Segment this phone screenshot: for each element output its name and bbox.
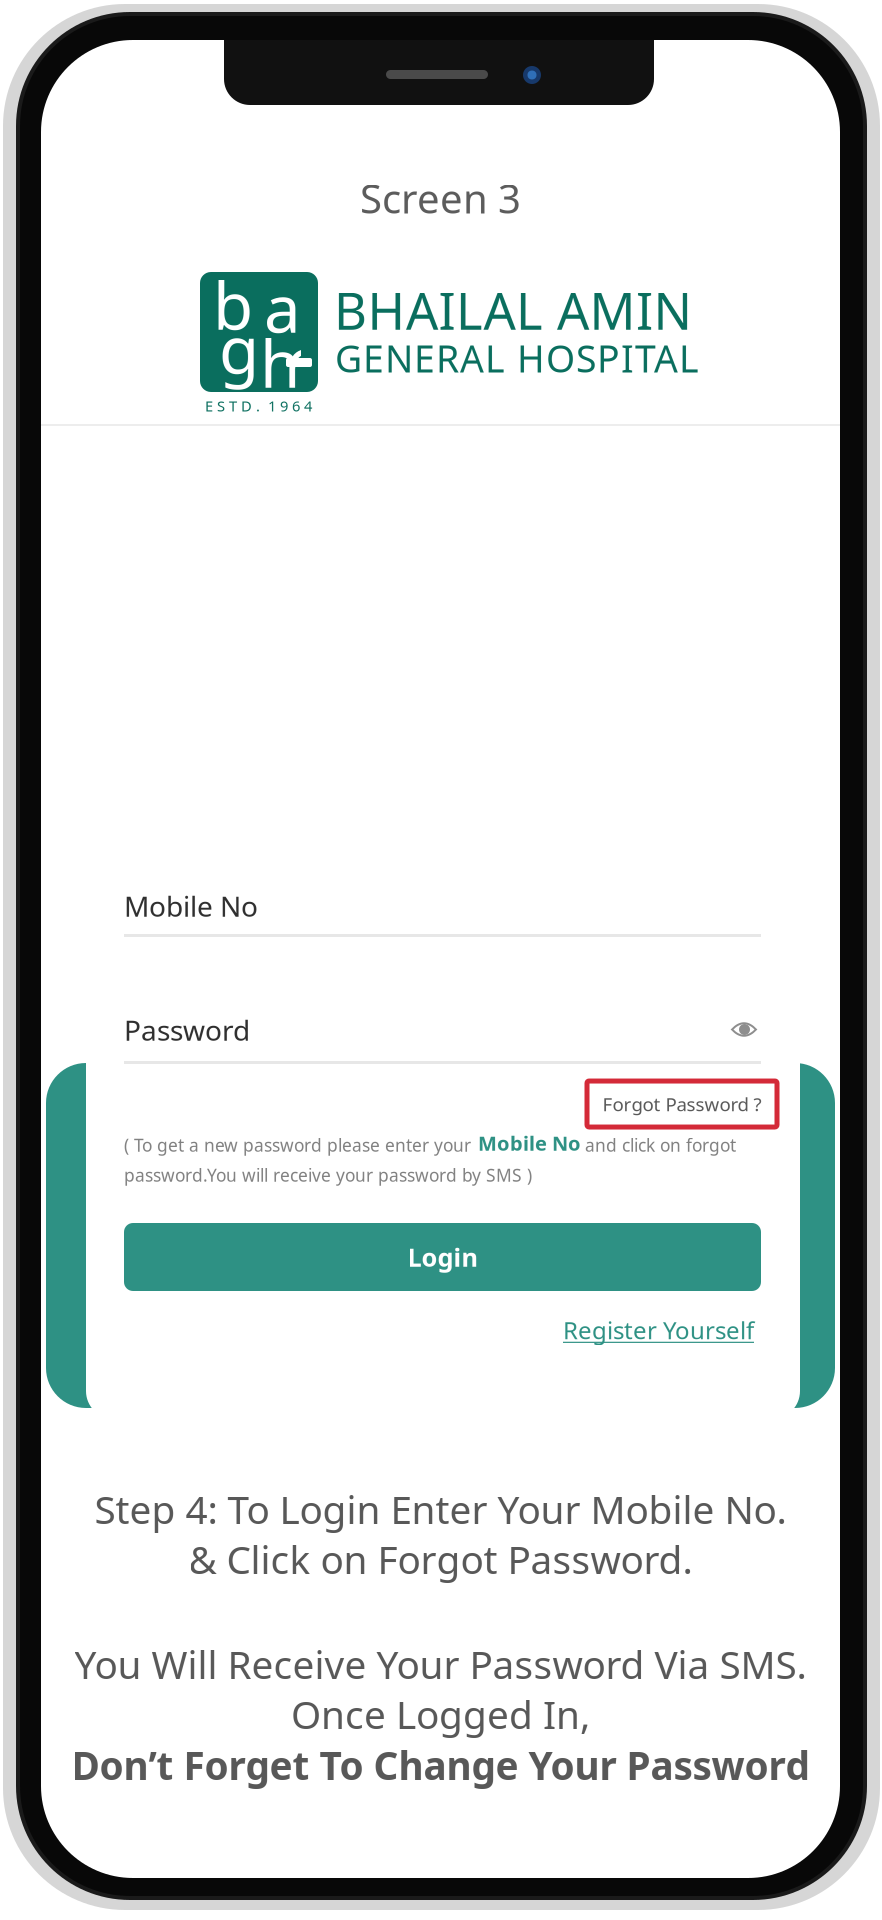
staticText: a	[264, 264, 301, 351]
staticText: g	[219, 305, 259, 392]
staticText: GENERAL HOSPITAL	[335, 333, 699, 383]
staticText: Screen 3	[360, 171, 521, 224]
staticText: Mobile No	[124, 887, 258, 925]
staticText: E S T D . 1 9 6 4	[205, 396, 312, 415]
staticText: b	[213, 261, 253, 348]
staticText: Register Yourself	[563, 1314, 754, 1346]
staticText: Password	[124, 1011, 250, 1049]
staticText: Step 4: To Login Enter Your Mobile No.	[94, 1483, 786, 1535]
staticText: password.You will receive your password …	[124, 1163, 532, 1186]
staticText: Forgot Password ?	[602, 1092, 761, 1116]
button[interactable]: Register Yourself	[514, 1310, 754, 1350]
staticText: ( To get a new password please enter you…	[124, 1133, 471, 1156]
staticText: & Click on Forgot Password.	[188, 1533, 692, 1585]
staticText: Mobile No	[478, 1130, 581, 1156]
staticText: Don’t Forget To Change Your Password	[71, 1739, 809, 1791]
staticText: h	[260, 319, 300, 406]
button[interactable]: Show password	[731, 1020, 757, 1039]
staticText: Once Logged In,	[291, 1688, 590, 1740]
staticText: and click on forgot	[585, 1133, 736, 1156]
staticText: You Will Receive Your Password Via SMS.	[74, 1638, 806, 1690]
button[interactable]: Forgot Password ?	[587, 1081, 777, 1127]
staticText: BHAILAL AMIN	[334, 276, 692, 344]
staticText: Login	[407, 1240, 477, 1274]
button[interactable]: Login	[124, 1223, 761, 1291]
